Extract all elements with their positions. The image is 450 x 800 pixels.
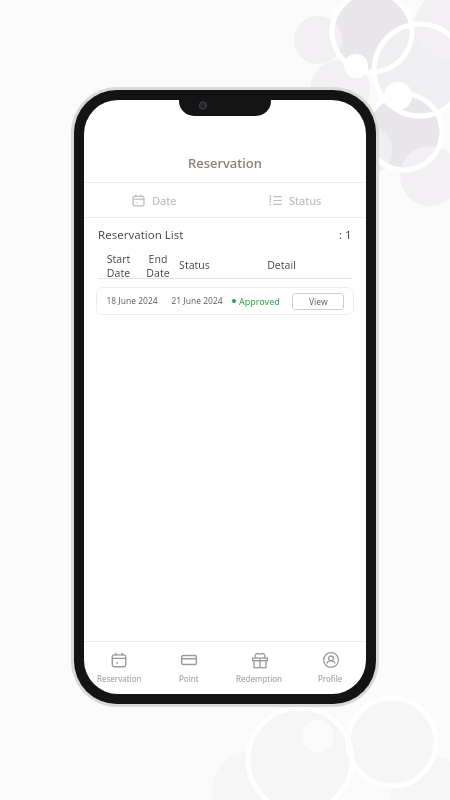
button[interactable]: View (292, 293, 344, 310)
button[interactable]: Date (84, 183, 225, 217)
staticText: Approved (239, 295, 280, 307)
staticText: : 1 (339, 227, 352, 243)
staticText: 18 June 2024 (106, 295, 158, 307)
staticText: Status (289, 193, 322, 208)
button[interactable]: Point (154, 642, 224, 694)
staticText: Redemption (236, 673, 283, 684)
staticText: Detail (267, 258, 296, 272)
staticText: 21 June 2024 (171, 295, 223, 307)
staticText: Reservation List (98, 227, 184, 243)
staticText: Profile (318, 673, 343, 684)
staticText: Status (179, 258, 210, 272)
staticText: Reservation (97, 673, 142, 684)
staticText: Date (152, 193, 177, 208)
button[interactable]: 18 June 2024 (96, 287, 354, 315)
staticText: View (309, 296, 328, 308)
staticText: Start Date (98, 252, 139, 278)
staticText: Point (179, 673, 199, 684)
button[interactable]: Status (225, 183, 366, 217)
button[interactable]: Profile (295, 642, 366, 694)
button[interactable]: Reservation (84, 642, 154, 694)
staticText: Reservation (188, 154, 262, 172)
button[interactable]: Redemption (224, 642, 295, 694)
staticText: End Date (139, 252, 177, 278)
